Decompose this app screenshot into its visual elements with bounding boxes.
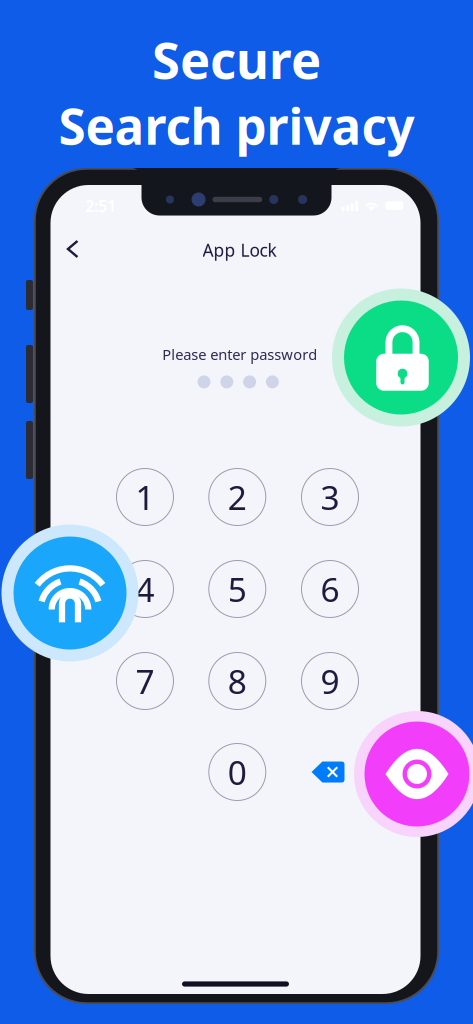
staticText: 0 [228,750,247,794]
button[interactable]: Delete [293,737,363,807]
staticText: 2 [228,475,247,519]
button[interactable]: 3 [284,451,376,543]
staticText: 3 [320,475,339,519]
staticText: Secure [152,26,321,93]
staticText: 6 [320,567,339,611]
staticText: Search privacy [58,93,414,158]
staticText: 5 [228,567,247,611]
staticText: 4 [135,567,154,611]
button[interactable]: 6 [284,543,376,635]
staticText: App Lock [202,238,276,261]
button[interactable]: 0 [191,726,283,818]
staticText: 9 [320,659,339,703]
button[interactable]: 5 [191,543,283,635]
staticText: Please enter password [162,345,317,364]
staticText: 1 [135,475,154,519]
button[interactable]: 1 [99,451,191,543]
button[interactable]: 8 [191,635,283,727]
button[interactable]: 2 [191,451,283,543]
button[interactable]: 7 [99,635,191,727]
staticText: 2:51 [85,195,116,216]
button[interactable]: 9 [284,635,376,727]
staticText: 8 [228,659,247,703]
button[interactable]: Back [53,229,93,269]
button[interactable]: 4 [99,543,191,635]
staticText: 7 [135,659,154,703]
button[interactable]: App Lock [179,233,299,267]
